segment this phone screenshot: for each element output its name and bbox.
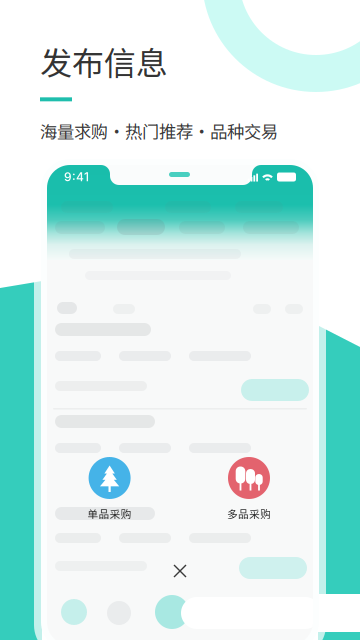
button[interactable]: 多品采购 (214, 457, 284, 521)
staticText: 9:41 (64, 170, 89, 184)
staticText: 单品采购 (88, 506, 132, 521)
button[interactable]: 单品采购 (75, 457, 145, 521)
staticText: 发布信息 (40, 38, 168, 84)
staticText: 海量求购·热门推荐·品种交易 (40, 118, 278, 143)
button[interactable]: Close (163, 554, 197, 588)
staticText: 多品采购 (227, 506, 271, 521)
